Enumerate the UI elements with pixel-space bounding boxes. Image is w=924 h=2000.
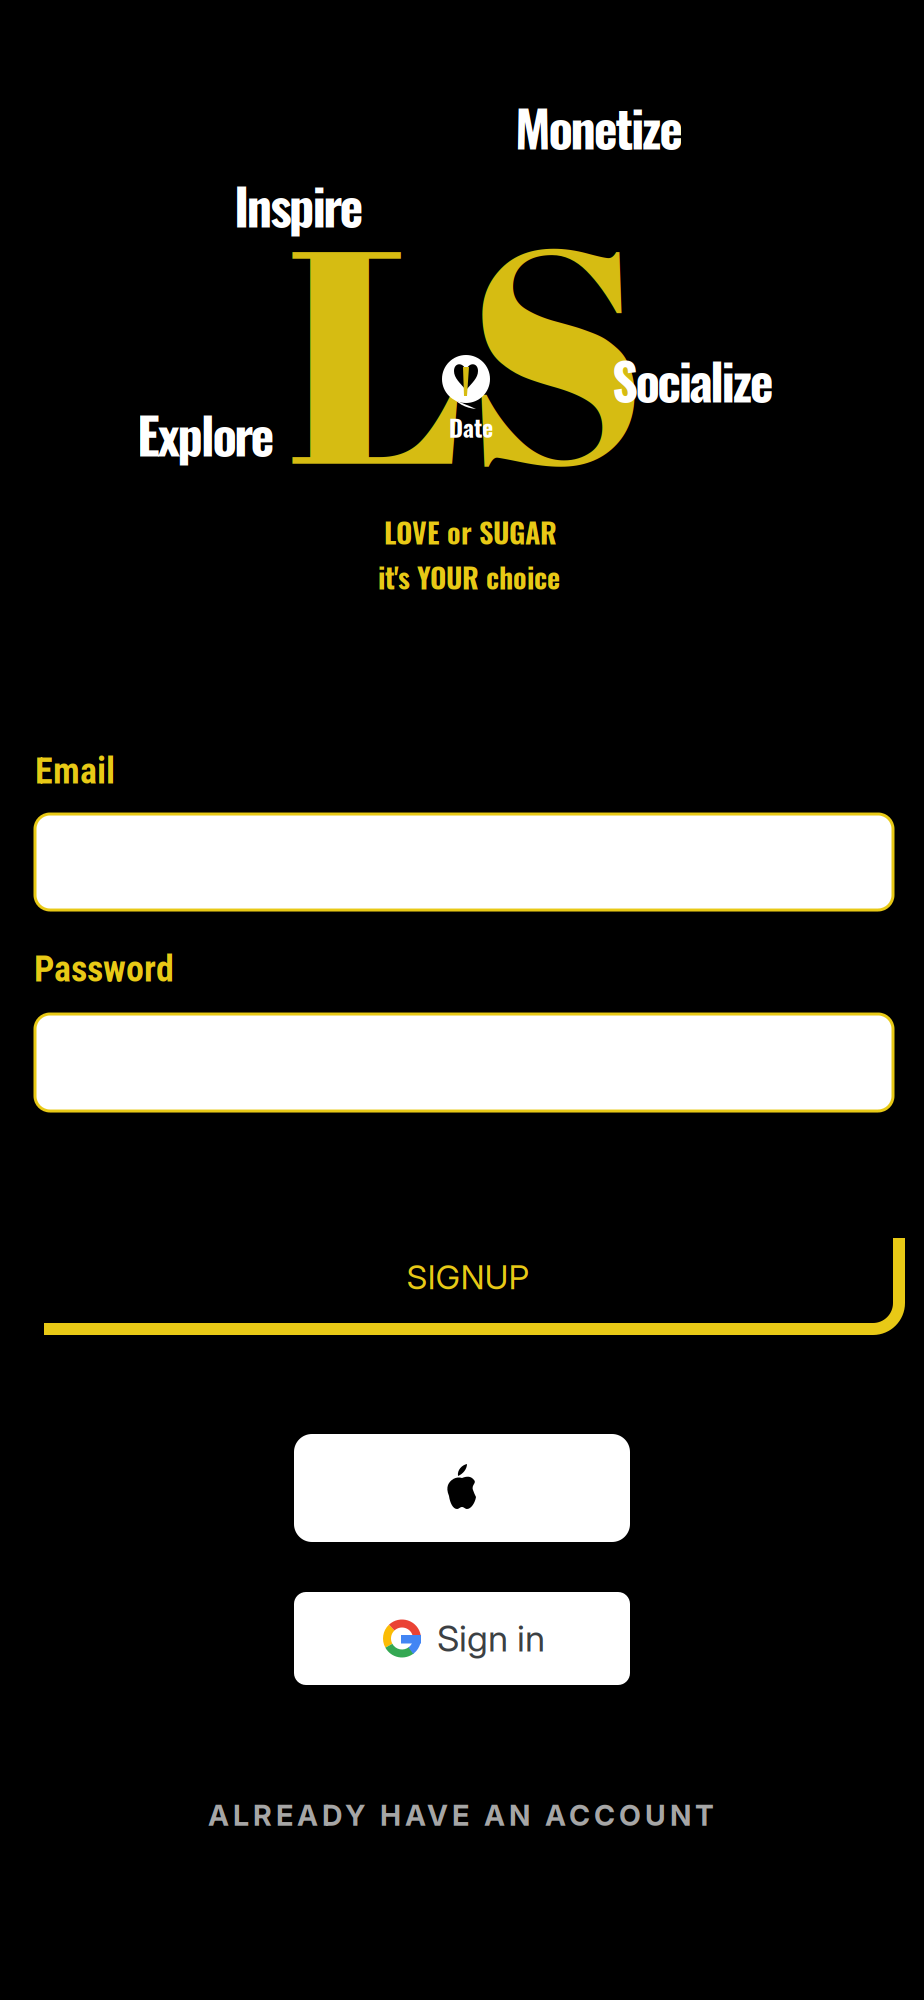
staticText: Monetize	[515, 89, 683, 164]
button[interactable]: SIGNUP	[0, 0, 924, 2000]
staticText: Inspire	[234, 167, 364, 242]
staticText: Date	[449, 409, 493, 445]
staticText: SIGNUP	[406, 1257, 529, 1297]
staticText: Email	[35, 750, 115, 792]
staticText: Explore	[137, 396, 275, 471]
staticText: it's YOUR choice	[378, 556, 560, 597]
staticText: LS	[286, 145, 647, 551]
staticText: ALREADY HAVE AN ACCOUNT	[208, 1798, 714, 1833]
staticText: Sign in	[437, 1617, 545, 1660]
staticText: LOVE or SUGAR	[384, 511, 557, 552]
staticText: Socialize	[612, 342, 774, 417]
button[interactable]: Sign in with Apple	[294, 1434, 630, 1542]
button[interactable]: Sign in	[294, 1592, 630, 1685]
button[interactable]: ALREADY HAVE AN ACCOUNT	[0, 1798, 923, 1833]
staticText: Password	[34, 948, 174, 990]
